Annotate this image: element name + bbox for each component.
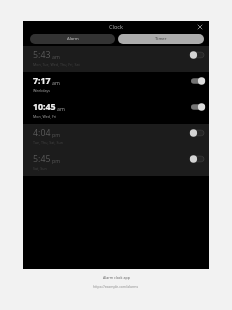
button[interactable]: Toggle alarm [190, 51, 204, 59]
button[interactable]: Toggle alarm [190, 155, 204, 163]
staticText: Mon, Wed, Fri [33, 114, 57, 119]
staticText: am [52, 53, 60, 60]
button[interactable]: Toggle alarm [190, 103, 204, 111]
staticText: pm [52, 131, 61, 138]
staticText: Tue, Thu, Sat, Sun [33, 140, 63, 145]
staticText: 7:17 [33, 75, 51, 87]
button[interactable]: 5:45 [23, 150, 209, 176]
button[interactable]: Close [195, 22, 205, 32]
staticText: am [57, 105, 65, 112]
staticText: pm [52, 157, 61, 164]
staticText: 10:45 [33, 101, 56, 113]
button[interactable]: Toggle alarm [190, 129, 204, 137]
button[interactable]: 4:04 [23, 124, 209, 150]
staticText: Alarm [67, 36, 79, 42]
button[interactable]: Toggle alarm [190, 77, 204, 85]
staticText: Clock [109, 23, 124, 31]
staticText: Sat, Sun [33, 166, 47, 171]
staticText: Timer [155, 36, 167, 42]
staticText: https://example.com/alarms [93, 284, 139, 289]
staticText: 5:45 [33, 153, 51, 165]
staticText: 5:43 [33, 49, 51, 61]
button[interactable]: 10:45 [23, 98, 209, 124]
button[interactable]: Timer [118, 34, 204, 44]
staticText: Mon, Tue, Wed, Thu, Fri, Sat [33, 62, 80, 67]
staticText: am [52, 79, 60, 86]
button[interactable]: 7:17 [23, 72, 209, 98]
staticText: 4:04 [33, 127, 51, 139]
staticText: Alarm clock app [103, 275, 130, 280]
staticText: Weekdays [33, 88, 51, 93]
button[interactable]: Alarm [30, 34, 115, 44]
button[interactable]: 5:43 [23, 46, 209, 72]
